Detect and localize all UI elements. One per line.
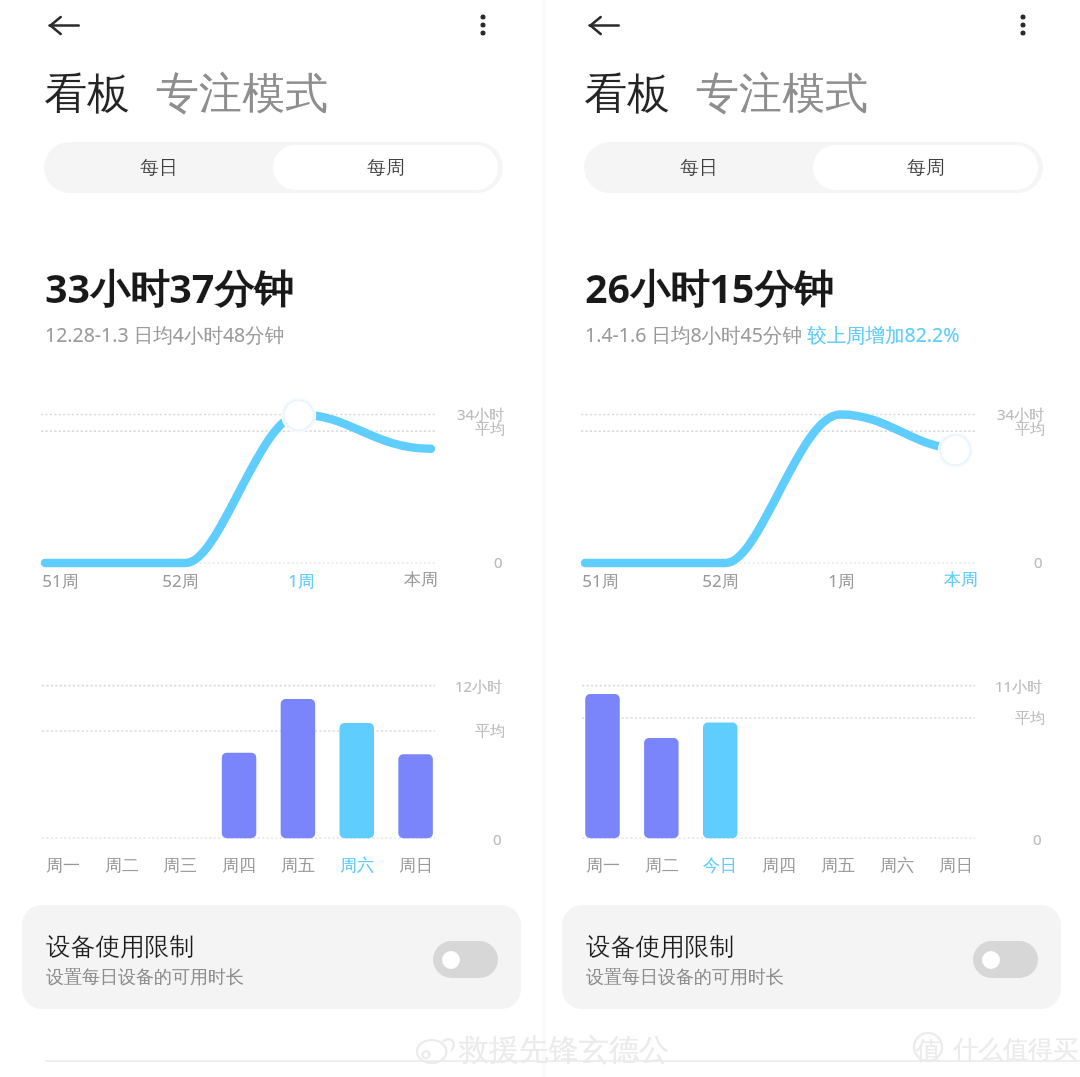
- staticText: 周一: [46, 855, 80, 876]
- staticText: 平均: [475, 722, 505, 741]
- staticText: 0: [1033, 829, 1042, 849]
- staticText: 看板: [584, 67, 670, 121]
- staticText: 设置每日设备的可用时长: [586, 966, 784, 989]
- button[interactable]: 每周: [813, 145, 1038, 190]
- staticText: 11小时: [995, 676, 1043, 696]
- staticText: 1周: [828, 569, 855, 592]
- button[interactable]: Back: [35, 0, 91, 53]
- staticText: 设备使用限制: [46, 931, 195, 962]
- staticText: 34小时: [997, 404, 1045, 424]
- staticText: 周二: [105, 855, 139, 876]
- staticText: 1周: [288, 569, 315, 592]
- staticText: 1.4-1.6 日均8小时45分钟: [585, 321, 807, 348]
- button[interactable]: 设备使用限制: [22, 905, 521, 1009]
- staticText: 周二: [645, 855, 679, 876]
- staticText: 周六: [340, 855, 374, 876]
- staticText: 周五: [821, 855, 855, 876]
- staticText: 值: [916, 1035, 941, 1066]
- staticText: 52周: [702, 569, 739, 592]
- staticText: 周四: [222, 855, 256, 876]
- staticText: 专注模式: [696, 67, 868, 121]
- staticText: 平均: [475, 420, 505, 439]
- staticText: 51周: [582, 569, 619, 592]
- staticText: 34小时: [457, 404, 505, 424]
- staticText: 设置每日设备的可用时长: [46, 966, 244, 989]
- staticText: 0: [493, 829, 502, 849]
- button[interactable]: 每日: [584, 142, 813, 193]
- staticText: 本周: [404, 569, 438, 590]
- staticText: 周日: [939, 855, 973, 876]
- staticText: 什么值得买: [953, 1034, 1078, 1065]
- staticText: 52周: [162, 569, 199, 592]
- button[interactable]: 设备使用限制: [562, 905, 1061, 1009]
- staticText: 周五: [281, 855, 315, 876]
- staticText: 平均: [1015, 420, 1045, 439]
- staticText: 每周: [367, 156, 405, 180]
- staticText: 每日: [680, 156, 718, 180]
- staticText: 周三: [163, 855, 197, 876]
- staticText: 26小时15分钟: [585, 261, 834, 315]
- staticText: 周四: [762, 855, 796, 876]
- button[interactable]: 每周: [273, 145, 498, 190]
- button[interactable]: More options: [999, 1, 1047, 49]
- staticText: 33小时37分钟: [45, 261, 294, 315]
- staticText: 较上周增加82.2%: [807, 321, 960, 348]
- staticText: 12小时: [455, 676, 503, 696]
- staticText: 设备使用限制: [586, 931, 735, 962]
- staticText: 本周: [944, 569, 978, 590]
- button[interactable]: 每日: [44, 142, 273, 193]
- staticText: 周一: [586, 855, 620, 876]
- staticText: 看板: [44, 67, 130, 121]
- staticText: 0: [494, 552, 503, 572]
- button[interactable]: 设备使用限制 toggle: [433, 941, 498, 978]
- button[interactable]: More options: [459, 1, 507, 49]
- staticText: 0: [1034, 552, 1043, 572]
- staticText: 今日: [703, 855, 737, 876]
- staticText: 12.28-1.3 日均4小时48分钟: [45, 321, 285, 348]
- staticText: 专注模式: [156, 67, 328, 121]
- staticText: 每周: [907, 156, 945, 180]
- staticText: 平均: [1015, 709, 1045, 728]
- staticText: 周日: [399, 855, 433, 876]
- staticText: 周六: [880, 855, 914, 876]
- staticText: 51周: [42, 569, 79, 592]
- button[interactable]: 设备使用限制 toggle: [973, 941, 1038, 978]
- staticText: 救援先锋玄德公: [459, 1031, 669, 1069]
- button[interactable]: Back: [575, 0, 631, 53]
- staticText: 每日: [140, 156, 178, 180]
